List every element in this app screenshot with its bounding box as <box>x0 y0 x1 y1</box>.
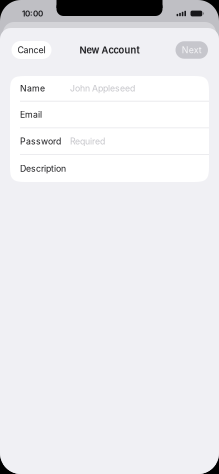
button[interactable]: Next <box>175 41 208 59</box>
staticText: 10:00 <box>22 9 43 18</box>
button[interactable]: Cancel <box>11 41 51 59</box>
staticText: Required <box>70 136 105 146</box>
button[interactable]: Password <box>10 128 209 155</box>
staticText: Password <box>20 136 61 146</box>
staticText: Name <box>20 83 45 94</box>
button[interactable]: Description <box>10 155 209 182</box>
staticText: Next <box>182 45 202 55</box>
button[interactable]: Email <box>10 101 209 128</box>
staticText: Cancel <box>17 45 45 55</box>
staticText: Description <box>20 163 66 174</box>
staticText: New Account <box>79 44 139 56</box>
staticText: Email <box>20 109 42 120</box>
staticText: John Appleseed <box>70 83 135 94</box>
button[interactable]: Name <box>10 76 209 101</box>
